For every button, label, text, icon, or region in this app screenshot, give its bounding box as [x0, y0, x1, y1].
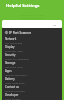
- button[interactable]: Helpful Settings: [6, 0, 64, 11]
- staticText: About this app: [5, 98, 21, 100]
- staticText: Contact us: [5, 85, 19, 89]
- button[interactable]: Storage: [2, 61, 62, 69]
- staticText: Developer: [5, 93, 19, 97]
- staticText: Security: [5, 53, 16, 57]
- staticText: Network: [5, 37, 17, 41]
- button[interactable]: Developer: [2, 93, 62, 100]
- staticText: Send us a message: [5, 90, 25, 93]
- button[interactable]: Apps: [2, 69, 62, 77]
- staticText: Battery: [5, 77, 15, 81]
- button[interactable]: Display: [2, 45, 62, 53]
- staticText: Installed applications: [5, 74, 27, 77]
- button[interactable]: Battery: [2, 77, 62, 85]
- staticText: Power usage detail: [5, 82, 25, 85]
- staticText: Free space 12 GB: [5, 66, 23, 69]
- staticText: Display: [5, 45, 15, 49]
- staticText: IP Port Scanner: [9, 31, 32, 35]
- button[interactable]: Contact us: [2, 85, 62, 93]
- staticText: Apps: [5, 69, 12, 73]
- staticText: Storage: [5, 61, 16, 65]
- staticText: Ad: [53, 23, 56, 26]
- button[interactable]: Advertisement banner: [2, 20, 62, 28]
- staticText: Screen lock, fingerprint: [5, 58, 29, 61]
- button[interactable]: Security: [2, 53, 62, 61]
- staticText: Helpful Settings: [6, 3, 40, 9]
- staticText: Wifi, mobile data: [5, 42, 23, 45]
- staticText: Brightness, sleep: [5, 50, 23, 53]
- button[interactable]: Network: [2, 37, 62, 45]
- button[interactable]: IP Port Scanner: [2, 28, 62, 37]
